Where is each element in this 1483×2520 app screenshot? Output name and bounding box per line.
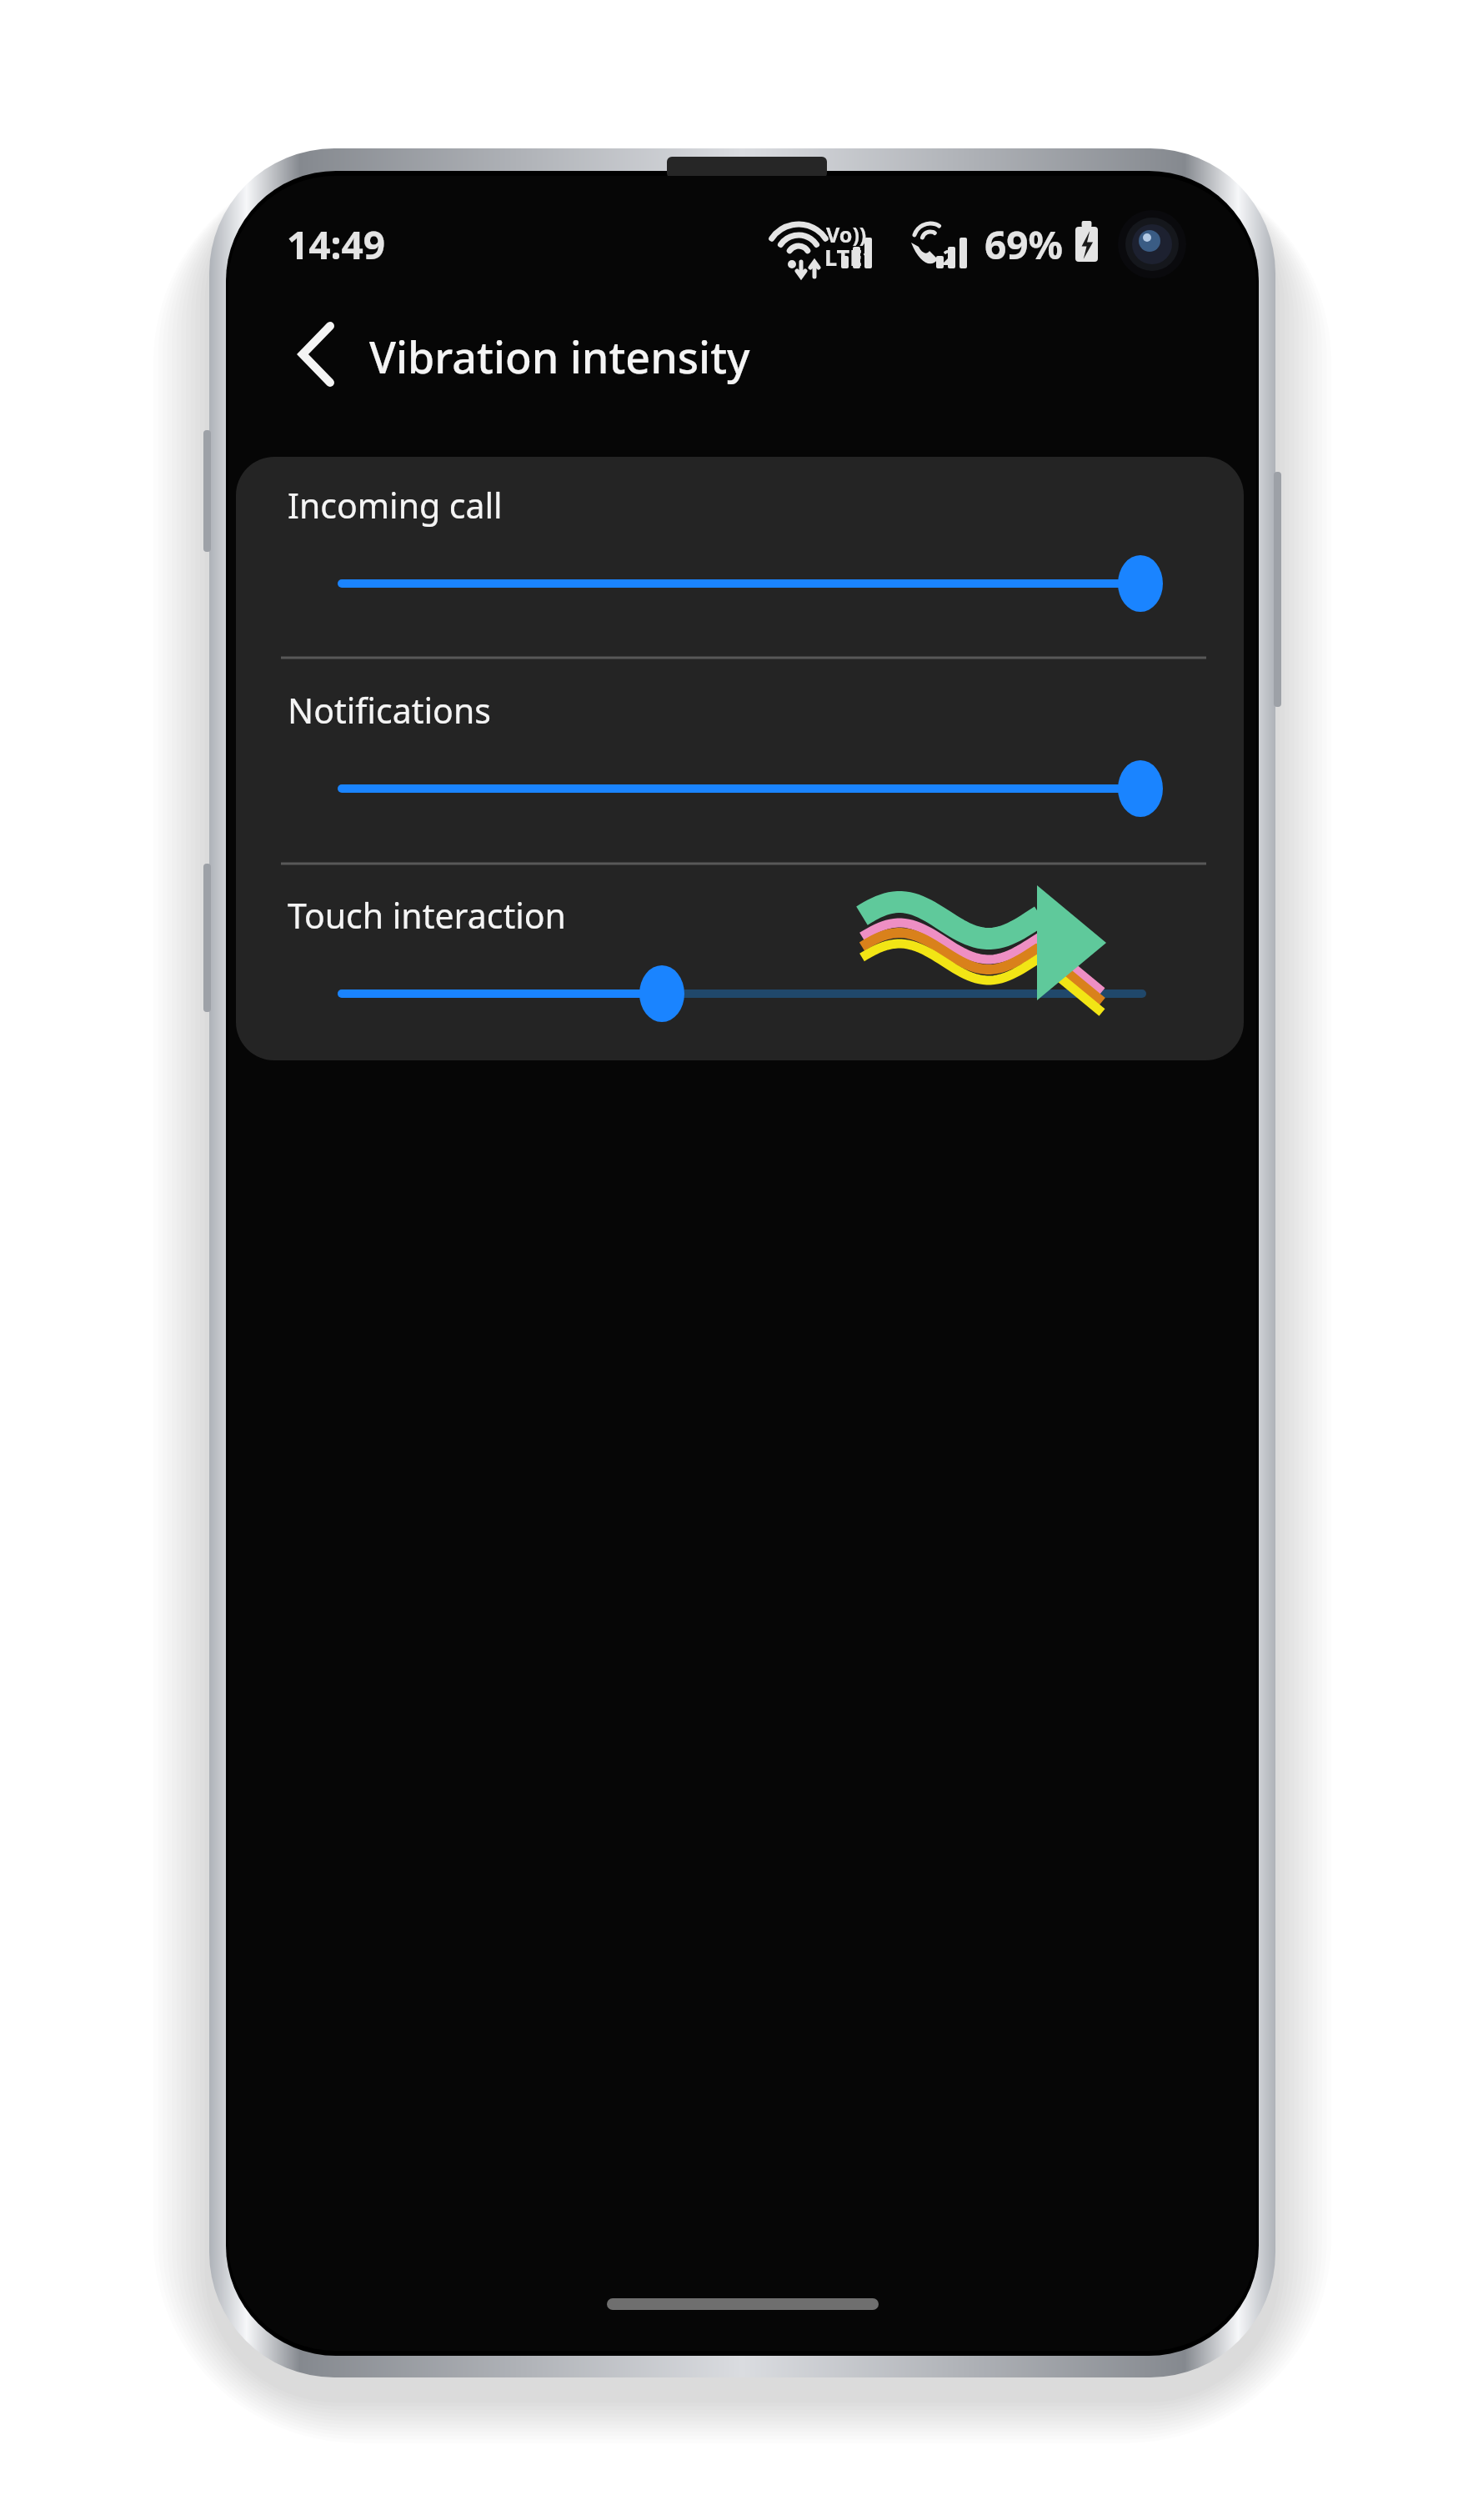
button[interactable] (236, 864, 1244, 1060)
button[interactable] (236, 457, 1244, 658)
button[interactable]: Back (264, 309, 358, 399)
staticText: Vibration intensity (369, 327, 750, 386)
staticText: Notifications (288, 687, 491, 734)
staticText: 2 (943, 243, 955, 271)
staticText: Incoming call (288, 482, 503, 529)
staticText: Touch interaction (288, 892, 566, 939)
staticText: 69% (984, 218, 1064, 271)
staticText: LTE1 (824, 242, 875, 273)
staticText: 14:49 (287, 218, 386, 271)
button[interactable] (236, 658, 1244, 864)
staticText: Vo)) (826, 220, 867, 248)
